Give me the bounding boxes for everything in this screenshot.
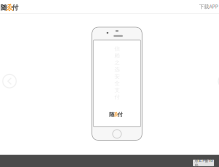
staticText: 支 xyxy=(114,87,119,93)
button[interactable]: 随 xyxy=(0,0,19,13)
staticText: 京ICP备10号 xyxy=(194,158,212,167)
button[interactable]: 下载APP xyxy=(199,1,219,12)
button[interactable]: Next slide xyxy=(217,73,219,89)
staticText: ゑ xyxy=(6,2,14,12)
staticText: 选 xyxy=(114,66,119,73)
staticText: 之 xyxy=(114,59,119,66)
staticText: 赖 xyxy=(114,52,119,59)
staticText: 下载APP xyxy=(199,3,218,10)
button[interactable]: Previous slide xyxy=(1,73,17,89)
staticText: 全 xyxy=(114,80,119,87)
staticText: 付 xyxy=(114,94,119,100)
staticText: 随 xyxy=(109,111,114,118)
staticText: 安 xyxy=(114,73,119,80)
staticText: 随 xyxy=(1,3,8,12)
staticText: 付 xyxy=(117,111,122,118)
staticText: 信 xyxy=(114,45,119,52)
staticText: 付 xyxy=(12,3,19,12)
staticText: ゑ xyxy=(113,111,118,118)
